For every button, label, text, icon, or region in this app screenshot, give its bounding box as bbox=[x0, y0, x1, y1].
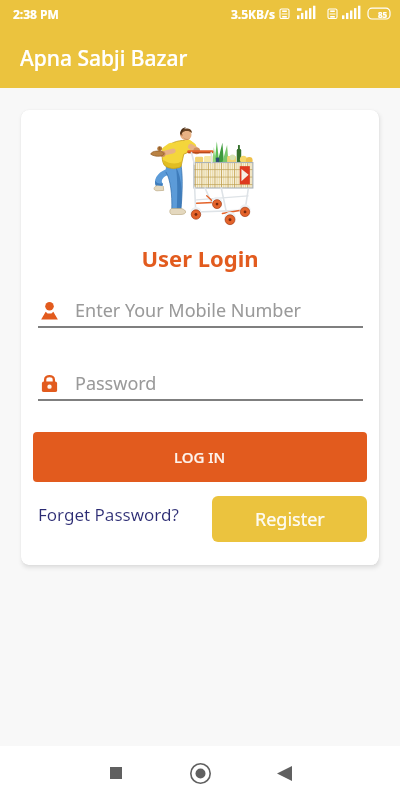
staticText: 85 bbox=[378, 9, 388, 20]
button[interactable]: Back bbox=[264, 753, 304, 793]
button[interactable]: LOG IN bbox=[33, 432, 367, 482]
staticText: Register bbox=[255, 507, 325, 532]
staticText: Forget Password? bbox=[38, 503, 179, 526]
staticText: Enter Your Mobile Number bbox=[75, 298, 302, 323]
staticText: LOG IN bbox=[174, 447, 226, 467]
button[interactable]: Forget Password? bbox=[33, 497, 184, 532]
staticText: User Login bbox=[21, 243, 379, 273]
staticText: 2:38 PM bbox=[13, 6, 59, 22]
button[interactable]: Home bbox=[180, 753, 220, 793]
button[interactable]: Register bbox=[212, 496, 367, 542]
button[interactable]: Recents bbox=[96, 753, 136, 793]
staticText: Apna Sabji Bazar bbox=[20, 44, 188, 73]
staticText: Password bbox=[75, 371, 157, 396]
staticText: 3.5KB/s bbox=[231, 6, 276, 22]
